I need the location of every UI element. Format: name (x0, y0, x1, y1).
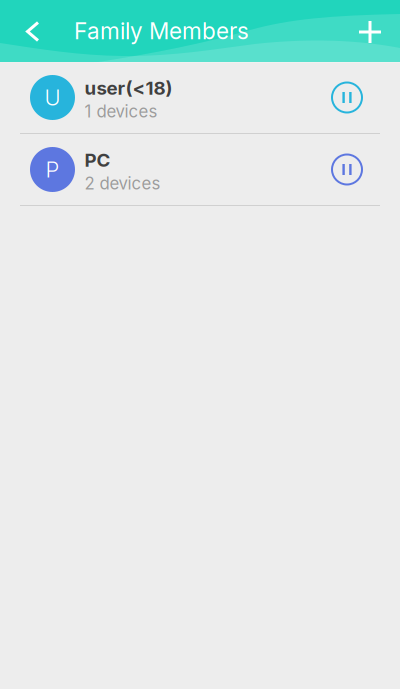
staticText: Family Members (74, 17, 249, 45)
staticText: PC (84, 148, 110, 171)
button[interactable]: Back (6, 9, 54, 53)
button[interactable]: Pause user(<18) (325, 75, 369, 119)
staticText: 1 devices (84, 101, 157, 121)
staticText: P (45, 156, 59, 183)
button[interactable]: Pause PC (325, 147, 369, 191)
staticText: U (44, 84, 60, 111)
staticText: 2 devices (84, 173, 160, 193)
staticText: user(<18) (84, 76, 172, 99)
button[interactable]: Add member (349, 9, 391, 53)
